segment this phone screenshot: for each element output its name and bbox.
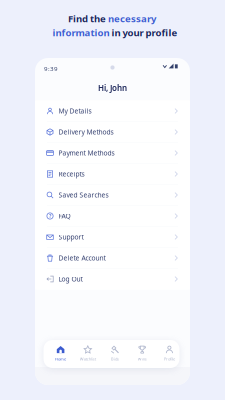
staticText: Home <box>55 356 66 362</box>
button[interactable]: Profile <box>152 340 179 368</box>
staticText: Find the <box>68 12 108 25</box>
button[interactable]: Saved Searches <box>35 184 190 205</box>
staticText: Receipts <box>58 170 84 178</box>
staticText: Bids <box>111 356 119 362</box>
staticText: Hi, John <box>98 83 127 93</box>
button[interactable]: ? <box>35 205 190 226</box>
button[interactable]: Support <box>35 226 190 247</box>
button[interactable]: Watchlist <box>71 340 98 368</box>
button[interactable]: Log Out <box>35 268 190 289</box>
button[interactable]: Payment Methods <box>35 142 190 163</box>
staticText: ? <box>49 212 51 220</box>
staticText: Watchlist <box>80 356 96 362</box>
staticText: Payment Methods <box>58 149 114 157</box>
staticText: Wins <box>138 356 147 362</box>
button[interactable]: Home <box>43 340 71 368</box>
staticText: in your profile <box>109 26 177 39</box>
staticText: My Details <box>58 107 91 115</box>
button[interactable]: Bids <box>98 340 125 368</box>
button[interactable]: Receipts <box>35 163 190 184</box>
staticText: information <box>52 26 109 39</box>
button[interactable]: Delivery Methods <box>35 121 190 142</box>
staticText: Saved Searches <box>58 191 108 199</box>
staticText: FAQ <box>58 212 70 220</box>
staticText: necessary <box>108 12 156 25</box>
staticText: 9:39 <box>44 64 58 73</box>
button[interactable]: My Details <box>35 100 190 121</box>
staticText: Log Out <box>58 275 82 283</box>
staticText: Support <box>58 233 83 241</box>
staticText: Delivery Methods <box>58 128 113 136</box>
staticText: Delete Account <box>58 254 105 262</box>
button[interactable]: Wins <box>125 340 152 368</box>
staticText: Profile <box>164 356 175 362</box>
button[interactable]: Delete Account <box>35 247 190 268</box>
